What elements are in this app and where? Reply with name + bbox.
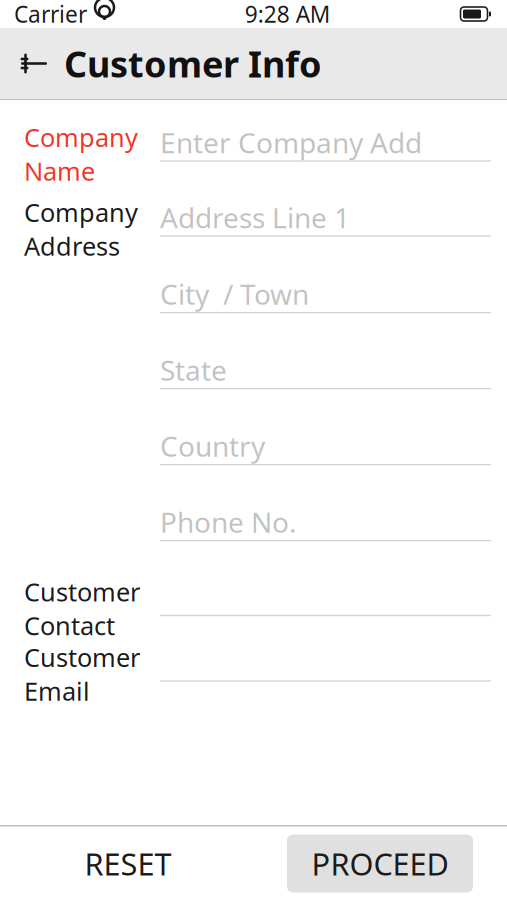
button[interactable]: [0, 414, 507, 490]
staticText: 9:28 AM: [245, 0, 331, 29]
staticText: Country: [160, 427, 265, 465]
staticText: RESET: [84, 843, 171, 884]
staticText: Phone No.: [160, 503, 297, 541]
staticText: Address Line 1: [160, 199, 350, 236]
staticText: Customer Contact: [24, 575, 140, 642]
staticText: Customer Info: [64, 40, 322, 87]
staticText: Customer Email: [24, 640, 140, 708]
staticText: PROCEED: [311, 843, 448, 884]
staticText: Company Name: [24, 120, 138, 188]
staticText: Company Address: [24, 195, 138, 263]
button[interactable]: Back: [10, 39, 58, 87]
button[interactable]: [0, 490, 507, 566]
button[interactable]: RESET: [53, 834, 203, 892]
staticText: Enter Company Add: [160, 124, 422, 161]
staticText: City / Town: [160, 275, 309, 313]
button[interactable]: PROCEED: [287, 834, 473, 892]
button[interactable]: Customer Contact: [0, 566, 507, 641]
button[interactable]: Company Address: [0, 186, 507, 262]
staticText: Carrier: [14, 0, 87, 29]
button[interactable]: Company Name: [0, 100, 507, 186]
staticText: State: [160, 351, 227, 389]
button[interactable]: Customer Email: [0, 641, 507, 701]
button[interactable]: [0, 338, 507, 414]
button[interactable]: [0, 262, 507, 338]
